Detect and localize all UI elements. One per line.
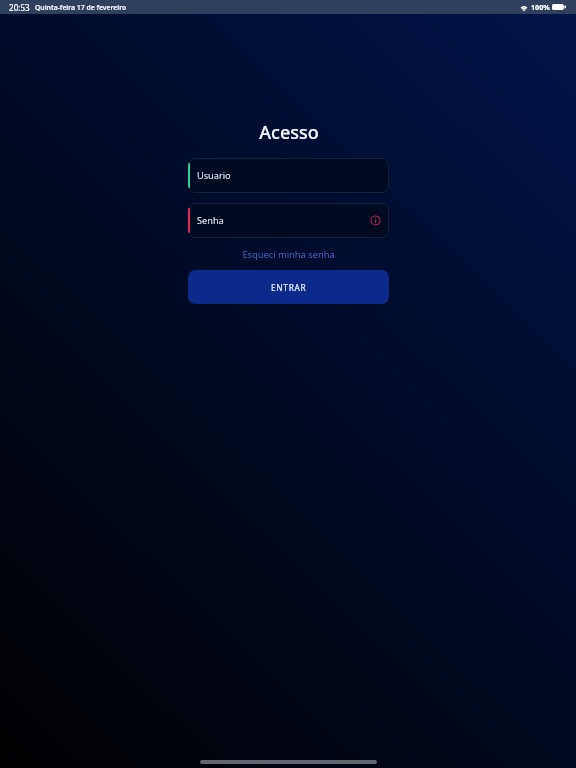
staticText: Esqueci minha senha bbox=[242, 248, 335, 261]
staticText: Acesso bbox=[259, 120, 319, 145]
staticText: Senha bbox=[197, 214, 224, 227]
button[interactable]: Esqueci minha senha bbox=[188, 245, 389, 263]
staticText: 100% bbox=[531, 2, 550, 12]
other: Error info bbox=[370, 215, 381, 226]
staticText: Quinta-feira 17 de fevereiro bbox=[35, 3, 127, 12]
staticText: Usuario bbox=[197, 169, 231, 182]
button[interactable]: ENTRAR bbox=[188, 270, 389, 304]
button[interactable]: Senha bbox=[188, 203, 389, 238]
staticText: 20:53 bbox=[9, 2, 30, 13]
button[interactable]: Usuario bbox=[188, 158, 389, 193]
staticText: ENTRAR bbox=[271, 282, 307, 293]
